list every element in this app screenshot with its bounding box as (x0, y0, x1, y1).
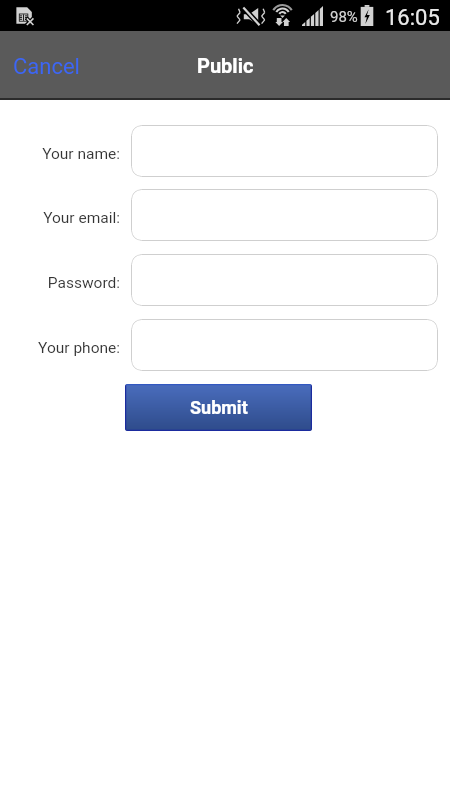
staticText: Public (197, 54, 254, 77)
staticText: Cancel (13, 54, 80, 80)
staticText: Submit (190, 397, 248, 418)
staticText: 16:05 (385, 5, 440, 31)
button[interactable] (131, 319, 438, 371)
button[interactable] (131, 254, 438, 306)
staticText: Password: (0, 274, 120, 292)
staticText: Your email: (0, 209, 120, 227)
staticText: Your phone: (0, 339, 120, 357)
button[interactable] (131, 125, 438, 177)
staticText: 98% (330, 8, 358, 26)
staticText: Your name: (0, 145, 120, 163)
other: No SIM card (16, 6, 34, 25)
button[interactable]: Submit (125, 384, 312, 431)
button[interactable] (131, 189, 438, 241)
button[interactable]: Cancel (0, 44, 93, 90)
